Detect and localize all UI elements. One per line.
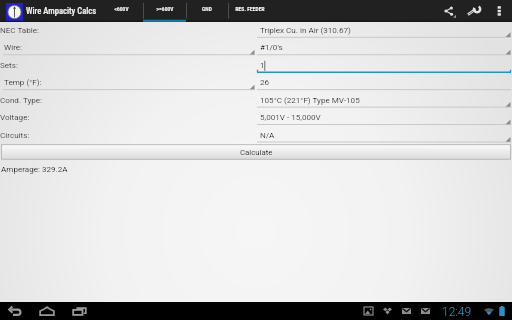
button[interactable]: Temp (°F): [0, 74, 255, 91]
staticText: Circuits: [0, 130, 30, 139]
staticText: N/A [260, 130, 275, 139]
staticText: Triplex Cu. in Air (310.67) [260, 25, 351, 34]
staticText: Amperage: 329.2A [1, 164, 68, 173]
staticText: Voltage: [0, 112, 30, 121]
staticText: RES. FEEDER [235, 7, 265, 13]
button[interactable]: Sets: [0, 57, 255, 74]
button[interactable]: Recents [72, 304, 87, 318]
button[interactable]: Back [7, 304, 22, 318]
button[interactable]: Cond. Type: [0, 92, 255, 109]
staticText: 1 [260, 60, 265, 69]
staticText: Wire Ampacity Calcs [26, 6, 97, 16]
button[interactable]: Share [442, 4, 458, 19]
button[interactable]: Wire: [0, 39, 255, 56]
button[interactable]: Voltage: [0, 109, 255, 126]
button[interactable]: App icon [6, 3, 23, 21]
button[interactable]: <600V [100, 0, 143, 22]
button[interactable]: 26 [255, 74, 512, 91]
staticText: #1/0's [260, 42, 283, 51]
staticText: Wire: [4, 42, 23, 51]
button[interactable]: Settings [466, 4, 482, 19]
button[interactable]: NEC Table: [0, 22, 255, 39]
button[interactable]: Triplex Cu. in Air (310.67) [255, 22, 512, 39]
staticText: GND [202, 7, 212, 13]
staticText: Temp (°F): [4, 77, 42, 86]
button[interactable]: RES. FEEDER [228, 0, 271, 22]
staticText: Cond. Type: [0, 95, 43, 104]
staticText: Calculate [240, 148, 273, 157]
button[interactable]: N/A [255, 127, 512, 144]
button[interactable]: #1/0's [255, 39, 512, 56]
staticText: NEC Table: [0, 25, 40, 34]
button[interactable]: Calculate [2, 145, 511, 160]
button[interactable]: More options [493, 3, 503, 19]
button[interactable]: 1 [255, 57, 512, 74]
staticText: <600V [114, 7, 129, 13]
button[interactable]: 105°C (221°F) Type MV-105 [255, 92, 512, 109]
staticText: 105°C (221°F) Type MV-105 [260, 95, 360, 104]
button[interactable]: >=600V [143, 0, 186, 22]
staticText: Sets: [0, 60, 18, 69]
staticText: 12:49 [442, 305, 472, 319]
button[interactable]: Home [39, 304, 55, 318]
staticText: 26 [260, 77, 270, 86]
button[interactable]: Circuits: [0, 127, 255, 144]
staticText: >=600V [156, 7, 174, 13]
button[interactable]: GND [186, 0, 228, 22]
button[interactable]: 5,001V - 15,000V [255, 109, 512, 126]
staticText: 5,001V - 15,000V [260, 112, 321, 121]
